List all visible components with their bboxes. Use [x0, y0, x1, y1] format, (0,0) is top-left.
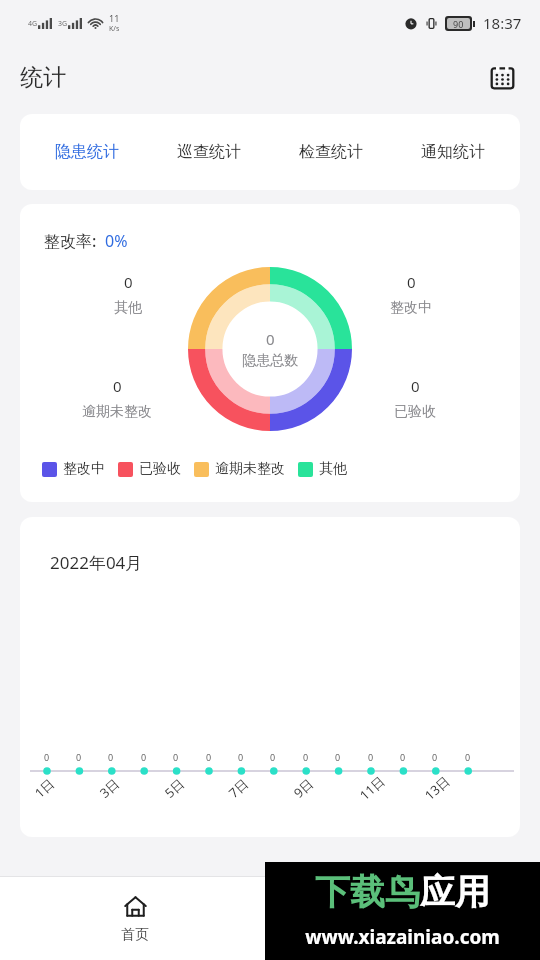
staticText: 整改中 [390, 299, 432, 317]
staticText: 0 [266, 329, 275, 349]
button[interactable]: 其他 [298, 460, 347, 478]
staticText: 0 [141, 751, 147, 763]
staticText: 巡查统计 [177, 142, 241, 162]
staticText: 已验收 [139, 460, 181, 478]
button[interactable]: 已验收 [118, 460, 181, 478]
staticText: 11 [109, 12, 120, 24]
staticText: 9日 [290, 774, 317, 802]
staticText: 0 [108, 751, 114, 763]
staticText: 0 [335, 751, 341, 763]
staticText: 0 [124, 272, 133, 292]
button[interactable]: 整改中 [42, 460, 105, 478]
staticText: 0 [411, 376, 420, 396]
staticText: 7日 [225, 774, 252, 802]
staticText: 检查统计 [299, 142, 363, 162]
staticText: 0 [400, 751, 406, 763]
staticText: 应用 [420, 870, 490, 914]
staticText: 0 [113, 376, 122, 396]
staticText: 13日 [421, 772, 453, 804]
button[interactable]: Calendar [480, 55, 524, 99]
staticText: www.xiazainiao.com [305, 924, 500, 950]
staticText: 90 [453, 18, 464, 29]
staticText: 其他 [114, 299, 142, 317]
staticText: 统计 [391, 926, 419, 944]
staticText: 首页 [121, 926, 149, 944]
button[interactable]: 通知统计 [392, 114, 514, 190]
staticText: 0 [407, 272, 416, 292]
staticText: 3日 [96, 774, 123, 802]
staticText: 0 [44, 751, 50, 763]
staticText: 隐患总数 [242, 352, 298, 370]
staticText: 0 [303, 751, 309, 763]
staticText: 0 [368, 751, 374, 763]
button[interactable]: 逾期未整改 [194, 460, 285, 478]
staticText: 11日 [356, 772, 388, 804]
staticText: K/s [109, 24, 120, 34]
button[interactable]: 隐患统计 [26, 114, 148, 190]
staticText: 0 [173, 751, 179, 763]
staticText: 1日 [31, 774, 58, 802]
button[interactable]: 巡查统计 [148, 114, 270, 190]
staticText: 下载鸟 [315, 870, 420, 914]
staticText: 统计 [20, 63, 66, 92]
staticText: 整改率: [44, 230, 97, 252]
staticText: 已验收 [394, 403, 436, 421]
staticText: 隐患统计 [55, 142, 119, 162]
staticText: 5日 [161, 774, 188, 802]
staticText: 0 [270, 751, 276, 763]
staticText: 3G [58, 19, 68, 29]
staticText: 其他 [319, 460, 347, 478]
staticText: 通知统计 [421, 142, 485, 162]
button[interactable]: 统计 [270, 877, 540, 960]
staticText: 整改中 [63, 460, 105, 478]
staticText: 0 [206, 751, 212, 763]
staticText: 0% [105, 230, 128, 252]
staticText: 0 [76, 751, 82, 763]
staticText: 逾期未整改 [215, 460, 285, 478]
staticText: 0 [432, 751, 438, 763]
staticText: 4G [28, 19, 38, 29]
button[interactable]: 首页 [0, 877, 270, 960]
staticText: 0 [465, 751, 471, 763]
staticText: 逾期未整改 [82, 403, 152, 421]
staticText: 0 [238, 751, 244, 763]
staticText: 2022年04月 [50, 551, 143, 574]
button[interactable]: 检查统计 [270, 114, 392, 190]
staticText: 18:37 [483, 13, 522, 33]
